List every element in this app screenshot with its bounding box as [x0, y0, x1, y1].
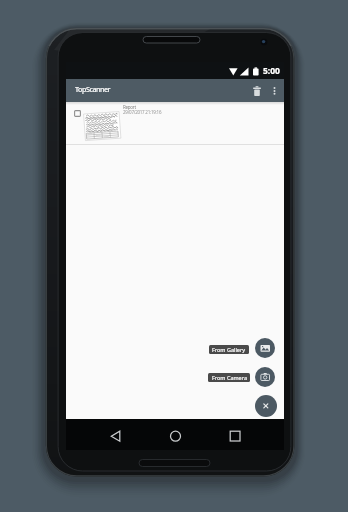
- button[interactable]: From Camera: [208, 373, 250, 382]
- button[interactable]: [211, 419, 284, 450]
- staticText: 29/07/2017 21:19:16: [123, 109, 162, 115]
- staticText: 5:00: [263, 65, 280, 77]
- button[interactable]: [255, 367, 275, 387]
- button[interactable]: [255, 395, 277, 417]
- button[interactable]: Report: [66, 102, 284, 144]
- staticText: From Gallery: [212, 346, 246, 353]
- button[interactable]: [255, 338, 275, 358]
- button[interactable]: [266, 79, 282, 102]
- button[interactable]: From Gallery: [209, 345, 249, 354]
- button[interactable]: [66, 419, 138, 450]
- staticText: TopScanner: [75, 84, 111, 94]
- button[interactable]: [138, 419, 211, 450]
- button[interactable]: [248, 79, 266, 102]
- staticText: From Camera: [212, 374, 247, 381]
- button[interactable]: [74, 110, 81, 117]
- staticText: Report: [123, 104, 136, 110]
